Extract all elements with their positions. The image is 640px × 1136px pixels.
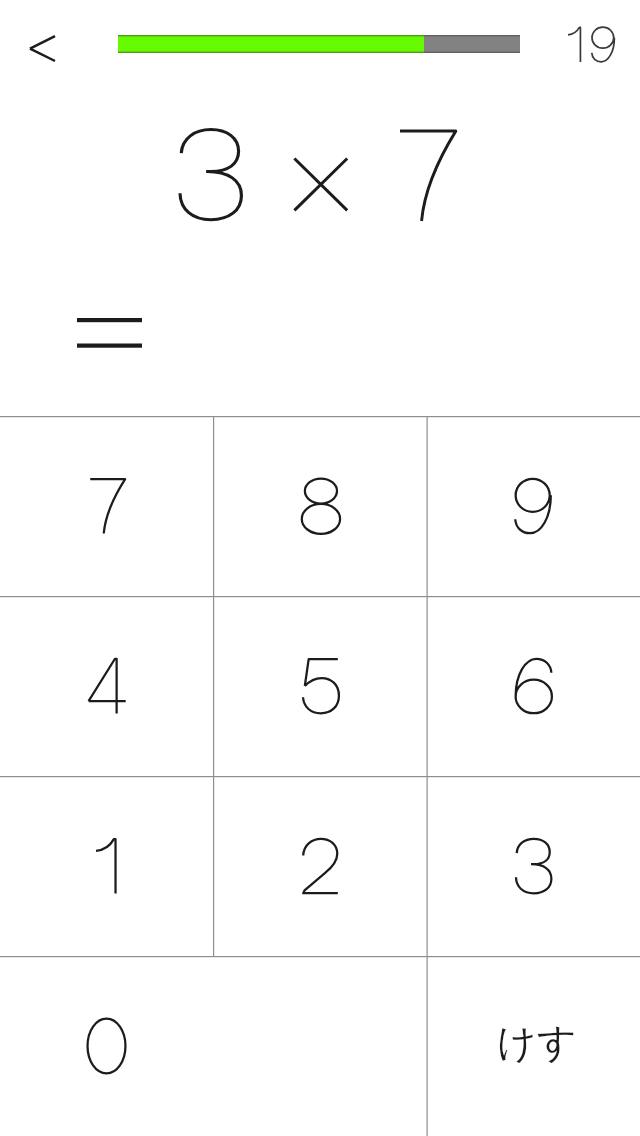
button[interactable]: 4 [0,596,214,776]
button[interactable]: けす [427,956,640,1136]
button[interactable]: 2 [214,776,427,956]
button[interactable]: 7 [0,416,214,596]
button[interactable]: Back [0,0,96,88]
button[interactable]: 5 [214,596,427,776]
button[interactable]: 9 [427,416,640,596]
button[interactable]: 3 [427,776,640,956]
button[interactable]: 8 [214,416,427,596]
button[interactable]: 0 [0,956,427,1136]
button[interactable]: 6 [427,596,640,776]
button[interactable]: 1 [0,776,214,956]
staticText: けす [497,1018,577,1067]
